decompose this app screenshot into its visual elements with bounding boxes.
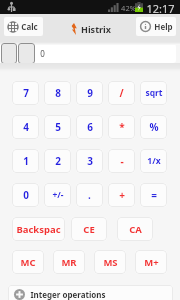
staticText: % — [149, 120, 159, 134]
staticText: 12:17 — [146, 1, 175, 15]
staticText: - — [120, 154, 124, 168]
button[interactable]: 3 — [76, 149, 103, 173]
staticText: sqrt — [145, 87, 163, 99]
button[interactable]: Mode 2 — [18, 43, 35, 64]
staticText: 42% — [121, 3, 136, 13]
staticText: + — [119, 188, 125, 202]
staticText: 5 — [55, 120, 61, 134]
staticText: 3 — [87, 154, 93, 168]
staticText: 2 — [55, 154, 61, 168]
staticText: * — [119, 120, 125, 134]
staticText: 7 — [23, 86, 29, 100]
button[interactable]: + — [108, 183, 135, 207]
staticText: Backspac — [16, 223, 61, 236]
staticText: 0 — [23, 188, 29, 202]
staticText: . — [88, 188, 91, 202]
button[interactable]: 6 — [76, 115, 103, 139]
button[interactable]: 1/x — [140, 149, 167, 173]
staticText: Integer operations — [30, 289, 106, 300]
button[interactable]: - — [108, 149, 135, 173]
staticText: 4 — [23, 120, 29, 134]
staticText: +/- — [52, 189, 64, 201]
staticText: Help — [154, 21, 173, 32]
button[interactable]: +/- — [44, 183, 71, 207]
button[interactable]: 2 — [44, 149, 71, 173]
button[interactable]: CE — [71, 217, 107, 241]
staticText: 6 — [87, 120, 93, 134]
staticText: 1 — [23, 154, 29, 168]
staticText: MS — [103, 256, 118, 269]
staticText: 0 — [40, 48, 45, 59]
staticText: Histrix — [81, 23, 111, 35]
staticText: = — [151, 188, 157, 202]
button[interactable]: 8 — [44, 81, 71, 105]
button[interactable]: Calc — [4, 17, 43, 36]
button[interactable]: 4 — [12, 115, 39, 139]
button[interactable]: = — [140, 183, 167, 207]
staticText: / — [119, 86, 124, 100]
staticText: 9 — [87, 86, 93, 100]
button[interactable]: % — [140, 115, 167, 139]
staticText: CA — [129, 223, 142, 236]
button[interactable]: 9 — [76, 81, 103, 105]
button[interactable]: Backspac — [12, 217, 65, 241]
button[interactable]: Mode — [1, 43, 17, 64]
button[interactable]: 1 — [12, 149, 39, 173]
button[interactable]: Help — [136, 17, 176, 36]
button[interactable]: M+ — [135, 250, 167, 274]
staticText: 1/x — [147, 155, 161, 167]
button[interactable]: MS — [94, 250, 126, 274]
staticText: M+ — [144, 256, 159, 269]
staticText: 8 — [55, 86, 61, 100]
button[interactable]: 7 — [12, 81, 39, 105]
staticText: CE — [83, 223, 95, 236]
button[interactable]: * — [108, 115, 135, 139]
staticText: MC — [20, 256, 36, 269]
button[interactable]: . — [76, 183, 103, 207]
button[interactable]: 0 — [12, 183, 39, 207]
button[interactable]: MR — [53, 250, 85, 274]
button[interactable]: MC — [12, 250, 44, 274]
button[interactable]: / — [108, 81, 135, 105]
button[interactable]: sqrt — [140, 81, 167, 105]
staticText: Calc — [21, 21, 38, 32]
staticText: MR — [61, 256, 77, 269]
button[interactable]: Integer operations — [8, 285, 173, 300]
button[interactable]: 5 — [44, 115, 71, 139]
button[interactable]: CA — [117, 217, 153, 241]
